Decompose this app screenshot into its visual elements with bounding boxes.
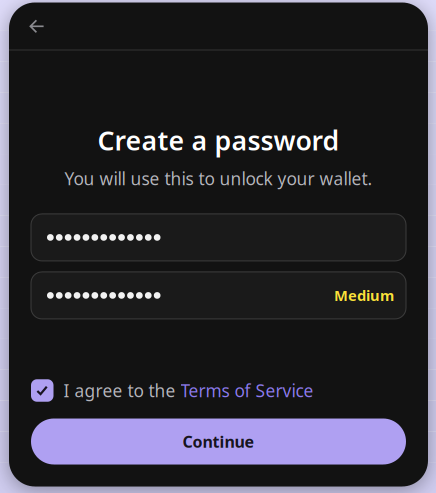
staticText: You will use this to unlock your wallet. xyxy=(64,167,372,190)
button[interactable]: Back xyxy=(15,4,59,48)
staticText: I agree to the xyxy=(63,379,180,402)
button[interactable]: Terms of Service xyxy=(180,379,313,402)
staticText: Medium xyxy=(334,286,394,305)
staticText: Continue xyxy=(182,431,254,452)
staticText: Create a password xyxy=(97,122,339,158)
button[interactable]: I agree to the xyxy=(31,379,180,402)
button[interactable]: Continue xyxy=(9,418,428,464)
staticText: Terms of Service xyxy=(180,379,313,402)
